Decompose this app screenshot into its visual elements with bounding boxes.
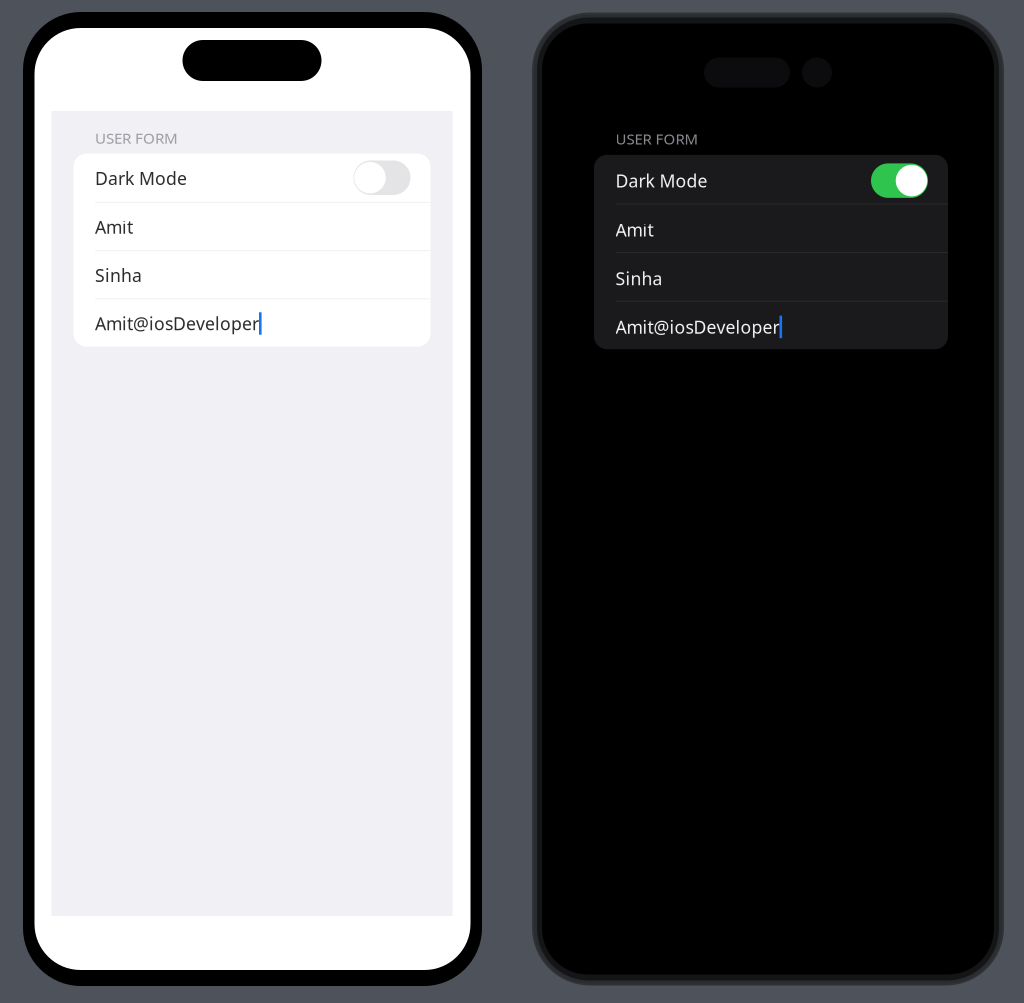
button[interactable]: Amit — [594, 204, 948, 252]
button[interactable]: Amit — [73, 203, 430, 250]
button[interactable]: Sinha — [594, 253, 948, 301]
staticText: USER FORM — [615, 128, 698, 149]
staticText: Dark Mode — [615, 169, 707, 193]
button[interactable]: Dark Mode — [73, 154, 430, 202]
button[interactable]: Sinha — [73, 251, 430, 298]
staticText: Dark Mode — [95, 166, 187, 190]
staticText: Amit — [95, 215, 133, 239]
staticText: Sinha — [615, 266, 662, 290]
staticText: Amit@iosDeveloper — [615, 315, 779, 339]
staticText: Amit@iosDeveloper — [95, 311, 259, 335]
button[interactable]: Dark Mode toggle — [871, 162, 928, 196]
button[interactable]: Dark Mode — [594, 155, 948, 203]
button[interactable]: Amit@iosDeveloper — [73, 299, 430, 347]
button[interactable]: Dark Mode toggle — [353, 160, 410, 195]
staticText: USER FORM — [95, 127, 178, 148]
button[interactable]: Amit@iosDeveloper — [594, 302, 948, 349]
staticText: Sinha — [95, 263, 142, 287]
staticText: Amit — [615, 218, 653, 242]
